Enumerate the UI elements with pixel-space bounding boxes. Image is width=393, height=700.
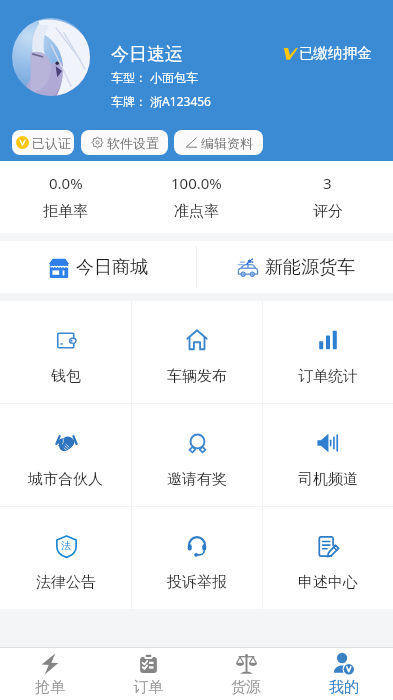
button[interactable]: 已认证 (12, 130, 74, 155)
staticText: 编辑资料 (201, 135, 253, 151)
button[interactable]: 司机频道 (263, 404, 393, 506)
staticText: 软件设置 (107, 135, 159, 151)
staticText: 今日速运 (111, 43, 183, 66)
button[interactable]: 订单 (99, 648, 197, 700)
button[interactable]: 车辆发布 (132, 301, 262, 403)
staticText: 申述中心 (298, 573, 358, 592)
staticText: 订单统计 (298, 367, 358, 386)
button[interactable]: 编辑资料 (174, 130, 263, 155)
staticText: 3 (323, 173, 332, 193)
button[interactable]: 0.0% (0, 173, 131, 221)
button[interactable]: 今日商城 (0, 241, 196, 293)
staticText: 已认证 (32, 135, 71, 151)
staticText: 投诉举报 (167, 573, 227, 592)
staticText: 拒单率 (43, 202, 88, 221)
button[interactable]: 3 (262, 173, 393, 221)
staticText: 新能源货车 (265, 256, 355, 279)
button[interactable]: 订单统计 (263, 301, 393, 403)
staticText: 准点率 (174, 202, 219, 221)
staticText: 车型： 小面包车 (111, 69, 199, 85)
staticText: 已缴纳押金 (299, 44, 372, 62)
staticText: 货源 (231, 678, 261, 697)
staticText: 车辆发布 (167, 367, 227, 386)
staticText: 订单 (133, 678, 163, 697)
button[interactable]: 申述中心 (263, 507, 393, 609)
staticText: 我的 (329, 678, 359, 697)
staticText: 法律公告 (36, 573, 96, 592)
button[interactable]: 100.0% (131, 173, 262, 221)
staticText: 抢单 (35, 678, 65, 697)
button[interactable]: 货源 (197, 648, 295, 700)
staticText: 法 (61, 539, 71, 552)
staticText: 城市合伙人 (28, 470, 103, 489)
button[interactable]: 城市合伙人 (0, 404, 131, 506)
staticText: 车牌： 浙A123456 (111, 93, 211, 109)
staticText: 钱包 (51, 367, 81, 386)
button[interactable]: 投诉举报 (132, 507, 262, 609)
staticText: 评分 (313, 202, 343, 221)
staticText: 今日商城 (76, 256, 148, 279)
button[interactable]: 邀请有奖 (132, 404, 262, 506)
button[interactable]: 钱包 (0, 301, 131, 403)
staticText: 100.0% (171, 173, 222, 193)
button[interactable]: 抢单 (0, 648, 99, 700)
button[interactable]: 软件设置 (81, 130, 168, 155)
button[interactable]: 新能源货车 (197, 241, 393, 293)
staticText: 司机频道 (298, 470, 358, 489)
button[interactable]: 我的 (295, 648, 393, 700)
staticText: 0.0% (49, 173, 83, 193)
staticText: 邀请有奖 (167, 470, 227, 489)
button[interactable]: 法 (0, 507, 131, 609)
